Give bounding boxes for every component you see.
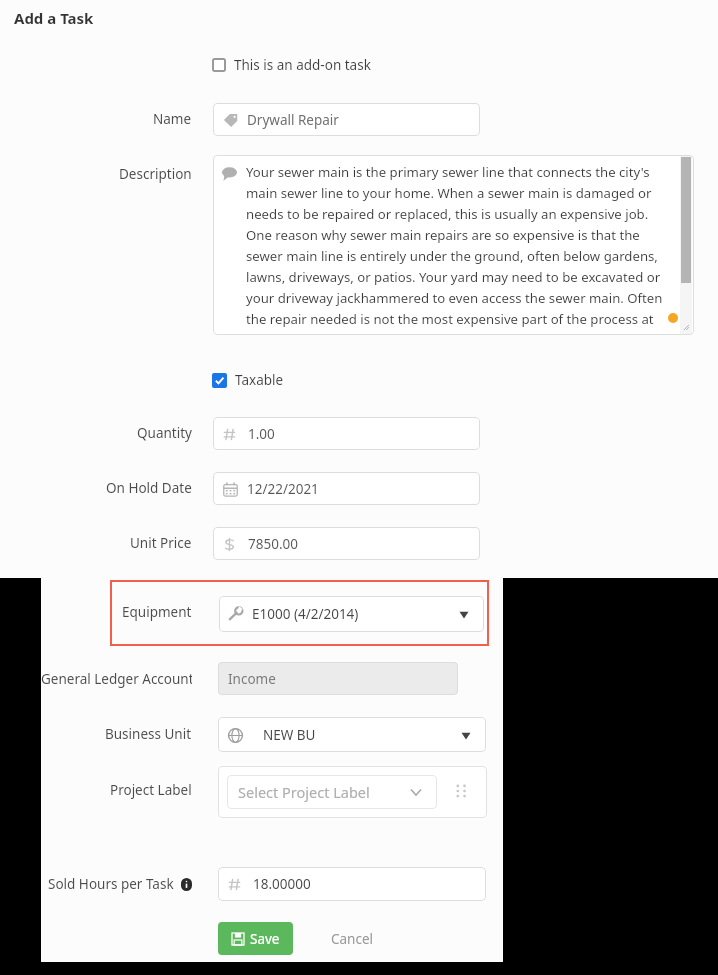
staticText: Unit Price	[130, 534, 192, 552]
staticText: Add a Task	[14, 8, 94, 28]
staticText: Taxable	[235, 371, 284, 389]
staticText: This is an add-on task	[234, 56, 371, 74]
staticText: General Ledger Account	[41, 670, 192, 688]
button[interactable]: 12/22/2021	[213, 472, 480, 505]
staticText: Description	[119, 165, 192, 183]
button[interactable]: Select Project Label	[227, 775, 437, 809]
button[interactable]: Cancel	[321, 922, 384, 955]
button[interactable]: 1.00	[213, 417, 480, 450]
button[interactable]: Save	[218, 922, 293, 955]
staticText: Equipment	[122, 603, 192, 621]
staticText: Income	[228, 670, 276, 688]
button[interactable]: NEW BU	[218, 717, 486, 752]
staticText: 18.00000	[253, 875, 311, 893]
staticText: Sold Hours per Task	[48, 875, 174, 893]
button[interactable]: 7850.00	[213, 527, 480, 560]
staticText: the repair needed is not the most expens…	[246, 310, 654, 331]
staticText: Business Unit	[105, 725, 192, 743]
staticText: Select Project Label	[238, 782, 370, 802]
staticText: Your sewer main is the primary sewer lin…	[246, 163, 650, 184]
staticText: sewer main line is entirely under the gr…	[246, 247, 658, 268]
staticText: One reason why sewer main repairs are so…	[246, 226, 640, 247]
button[interactable]: Your sewer main is the primary sewer lin…	[213, 155, 694, 335]
staticText: On Hold Date	[106, 479, 192, 497]
staticText: NEW BU	[263, 726, 316, 744]
button[interactable]: Drywall Repair	[213, 103, 480, 136]
staticText: 12/22/2021	[247, 480, 319, 498]
staticText: 7850.00	[248, 535, 298, 553]
staticText: Project Label	[110, 781, 192, 799]
staticText: 1.00	[248, 425, 275, 443]
staticText: E1000 (4/2/2014)	[252, 605, 359, 623]
staticText: main sewer line to your home. When a sew…	[246, 184, 652, 205]
staticText: needs to be repaired or replaced, this i…	[246, 205, 649, 226]
button[interactable]: This is an add-on task	[212, 54, 371, 76]
staticText: Name	[153, 110, 192, 128]
button[interactable]: Reorder	[450, 780, 472, 802]
staticText: your driveway jackhammered to even acces…	[246, 289, 663, 310]
button[interactable]: E1000 (4/2/2014)	[219, 596, 484, 632]
button[interactable]: 18.00000	[218, 867, 486, 901]
staticText: Cancel	[331, 930, 374, 948]
staticText: Quantity	[137, 424, 192, 442]
button[interactable]: Taxable	[212, 369, 284, 391]
staticText: Drywall Repair	[247, 111, 339, 129]
other: Info	[181, 878, 192, 891]
staticText: lawns, driveways, or patios. Your yard m…	[246, 268, 661, 289]
staticText: Save	[250, 930, 280, 948]
